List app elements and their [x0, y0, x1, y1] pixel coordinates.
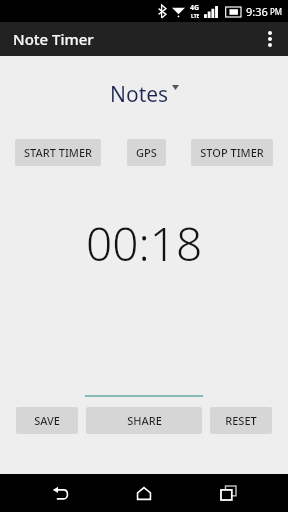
staticText: PM [270, 6, 283, 17]
button[interactable]: START TIMER [15, 139, 101, 166]
staticText: 4G [190, 3, 200, 13]
staticText: 00:18 [86, 212, 203, 275]
staticText: 9:36 [246, 4, 268, 19]
button[interactable]: More options [252, 22, 288, 56]
staticText: LTE [191, 13, 200, 20]
button[interactable]: SAVE [16, 407, 78, 434]
staticText: Note Timer [13, 29, 94, 49]
button[interactable]: Notes [104, 78, 185, 111]
button[interactable]: GPS [127, 139, 166, 166]
staticText: RESET [225, 413, 257, 428]
staticText: SHARE [127, 413, 162, 428]
button[interactable]: Home [120, 474, 168, 512]
button[interactable]: RESET [210, 407, 272, 434]
button[interactable]: Recent apps [204, 474, 252, 512]
staticText: Notes [110, 80, 169, 109]
button[interactable]: STOP TIMER [191, 139, 273, 166]
staticText: GPS [136, 145, 157, 160]
staticText: START TIMER [24, 145, 92, 160]
staticText: SAVE [34, 413, 60, 428]
button[interactable]: Back [36, 474, 84, 512]
button[interactable]: SHARE [86, 407, 202, 434]
staticText: STOP TIMER [200, 145, 264, 160]
